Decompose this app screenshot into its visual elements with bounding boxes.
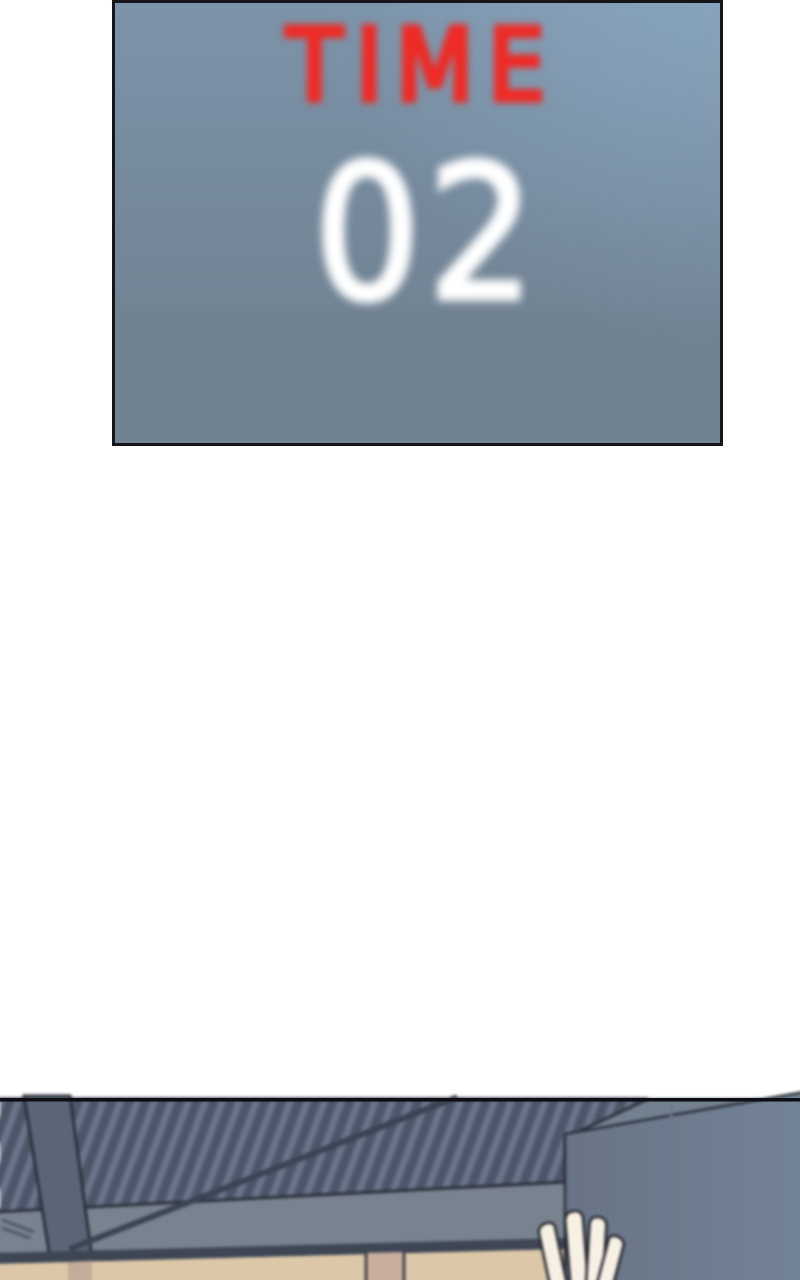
button[interactable]	[0, 0, 800, 1280]
